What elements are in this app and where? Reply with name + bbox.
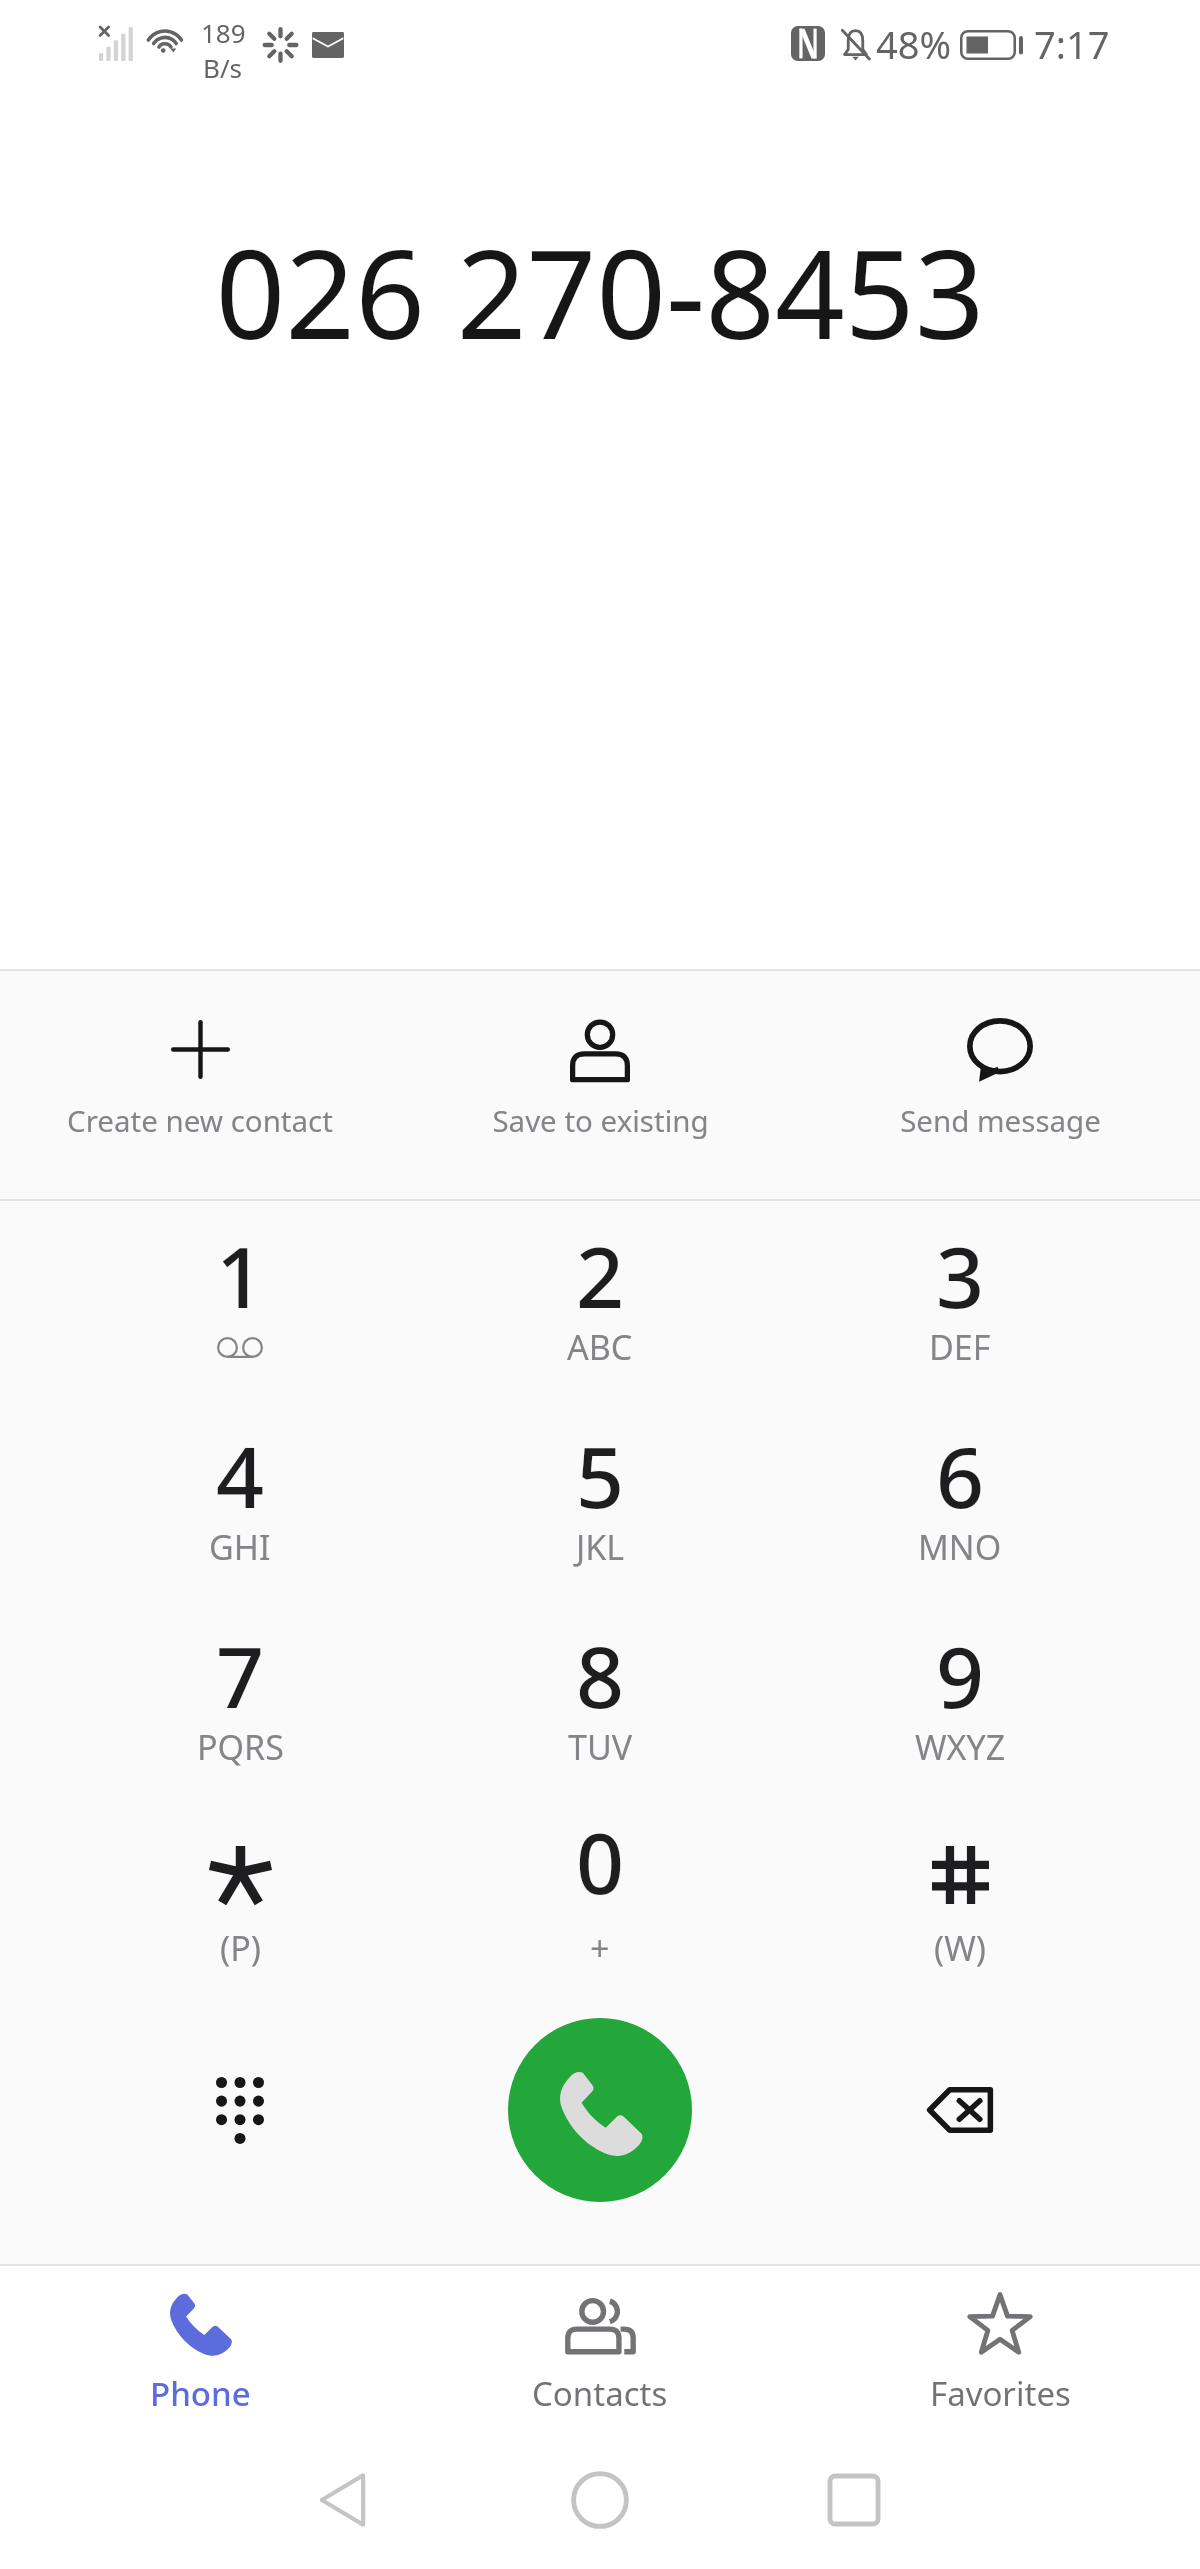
button[interactable]: Phone: [0, 2266, 400, 2421]
button[interactable]: 5: [420, 1390, 780, 1590]
button[interactable]: 9: [780, 1590, 1140, 1790]
staticText: (P): [220, 1925, 261, 1971]
staticText: 1: [216, 1218, 265, 1332]
button[interactable]: 7: [60, 1590, 420, 1790]
button[interactable]: (W): [780, 1781, 1140, 1968]
staticText: 2: [576, 1218, 625, 1332]
button[interactable]: Recents: [791, 2430, 917, 2569]
staticText: Contacts: [532, 2371, 668, 2416]
button[interactable]: Delete: [780, 1990, 1140, 2230]
button[interactable]: 2: [420, 1190, 780, 1390]
staticText: 7:17: [1034, 18, 1110, 70]
staticText: TUV: [568, 1724, 633, 1770]
staticText: 5: [576, 1418, 625, 1532]
staticText: 6: [936, 1418, 985, 1532]
staticText: Save to existing: [492, 1100, 709, 1140]
button[interactable]: Save to existing: [400, 970, 800, 1199]
button[interactable]: 8: [420, 1590, 780, 1790]
staticText: B/s: [203, 50, 243, 85]
button[interactable]: 4: [60, 1390, 420, 1590]
button[interactable]: 1: [60, 1190, 420, 1390]
staticText: Create new contact: [67, 1100, 333, 1140]
button[interactable]: Create new contact: [0, 970, 400, 1199]
button[interactable]: Contacts: [400, 2266, 800, 2421]
staticText: MNO: [918, 1524, 1002, 1570]
staticText: WXYZ: [915, 1724, 1006, 1770]
staticText: 026 270-8453: [0, 209, 1200, 375]
button[interactable]: 0: [420, 1781, 780, 1968]
staticText: GHI: [209, 1524, 271, 1570]
staticText: 189: [201, 15, 246, 50]
staticText: Favorites: [930, 2371, 1071, 2416]
staticText: JKL: [576, 1524, 625, 1570]
staticText: +: [590, 1925, 610, 1971]
staticText: DEF: [929, 1324, 991, 1370]
button[interactable]: Home: [537, 2430, 663, 2569]
staticText: 3: [936, 1218, 985, 1332]
staticText: 7: [216, 1618, 265, 1732]
staticText: ABC: [567, 1324, 633, 1370]
button[interactable]: Favorites: [800, 2266, 1200, 2421]
staticText: 0: [576, 1804, 625, 1918]
button[interactable]: Hide dialpad: [60, 1990, 420, 2230]
staticText: 48%: [876, 18, 952, 70]
staticText: 9: [936, 1618, 985, 1732]
button[interactable]: Call: [508, 2018, 692, 2202]
staticText: PQRS: [197, 1724, 284, 1770]
staticText: Phone: [150, 2371, 251, 2416]
staticText: (W): [934, 1925, 987, 1971]
staticText: 4: [216, 1418, 265, 1532]
staticText: Send message: [900, 1100, 1101, 1140]
staticText: 8: [576, 1618, 625, 1732]
button[interactable]: 6: [780, 1390, 1140, 1590]
button[interactable]: Back: [280, 2430, 406, 2569]
button[interactable]: (P): [60, 1781, 420, 1968]
button[interactable]: Send message: [800, 970, 1200, 1199]
button[interactable]: 3: [780, 1190, 1140, 1390]
